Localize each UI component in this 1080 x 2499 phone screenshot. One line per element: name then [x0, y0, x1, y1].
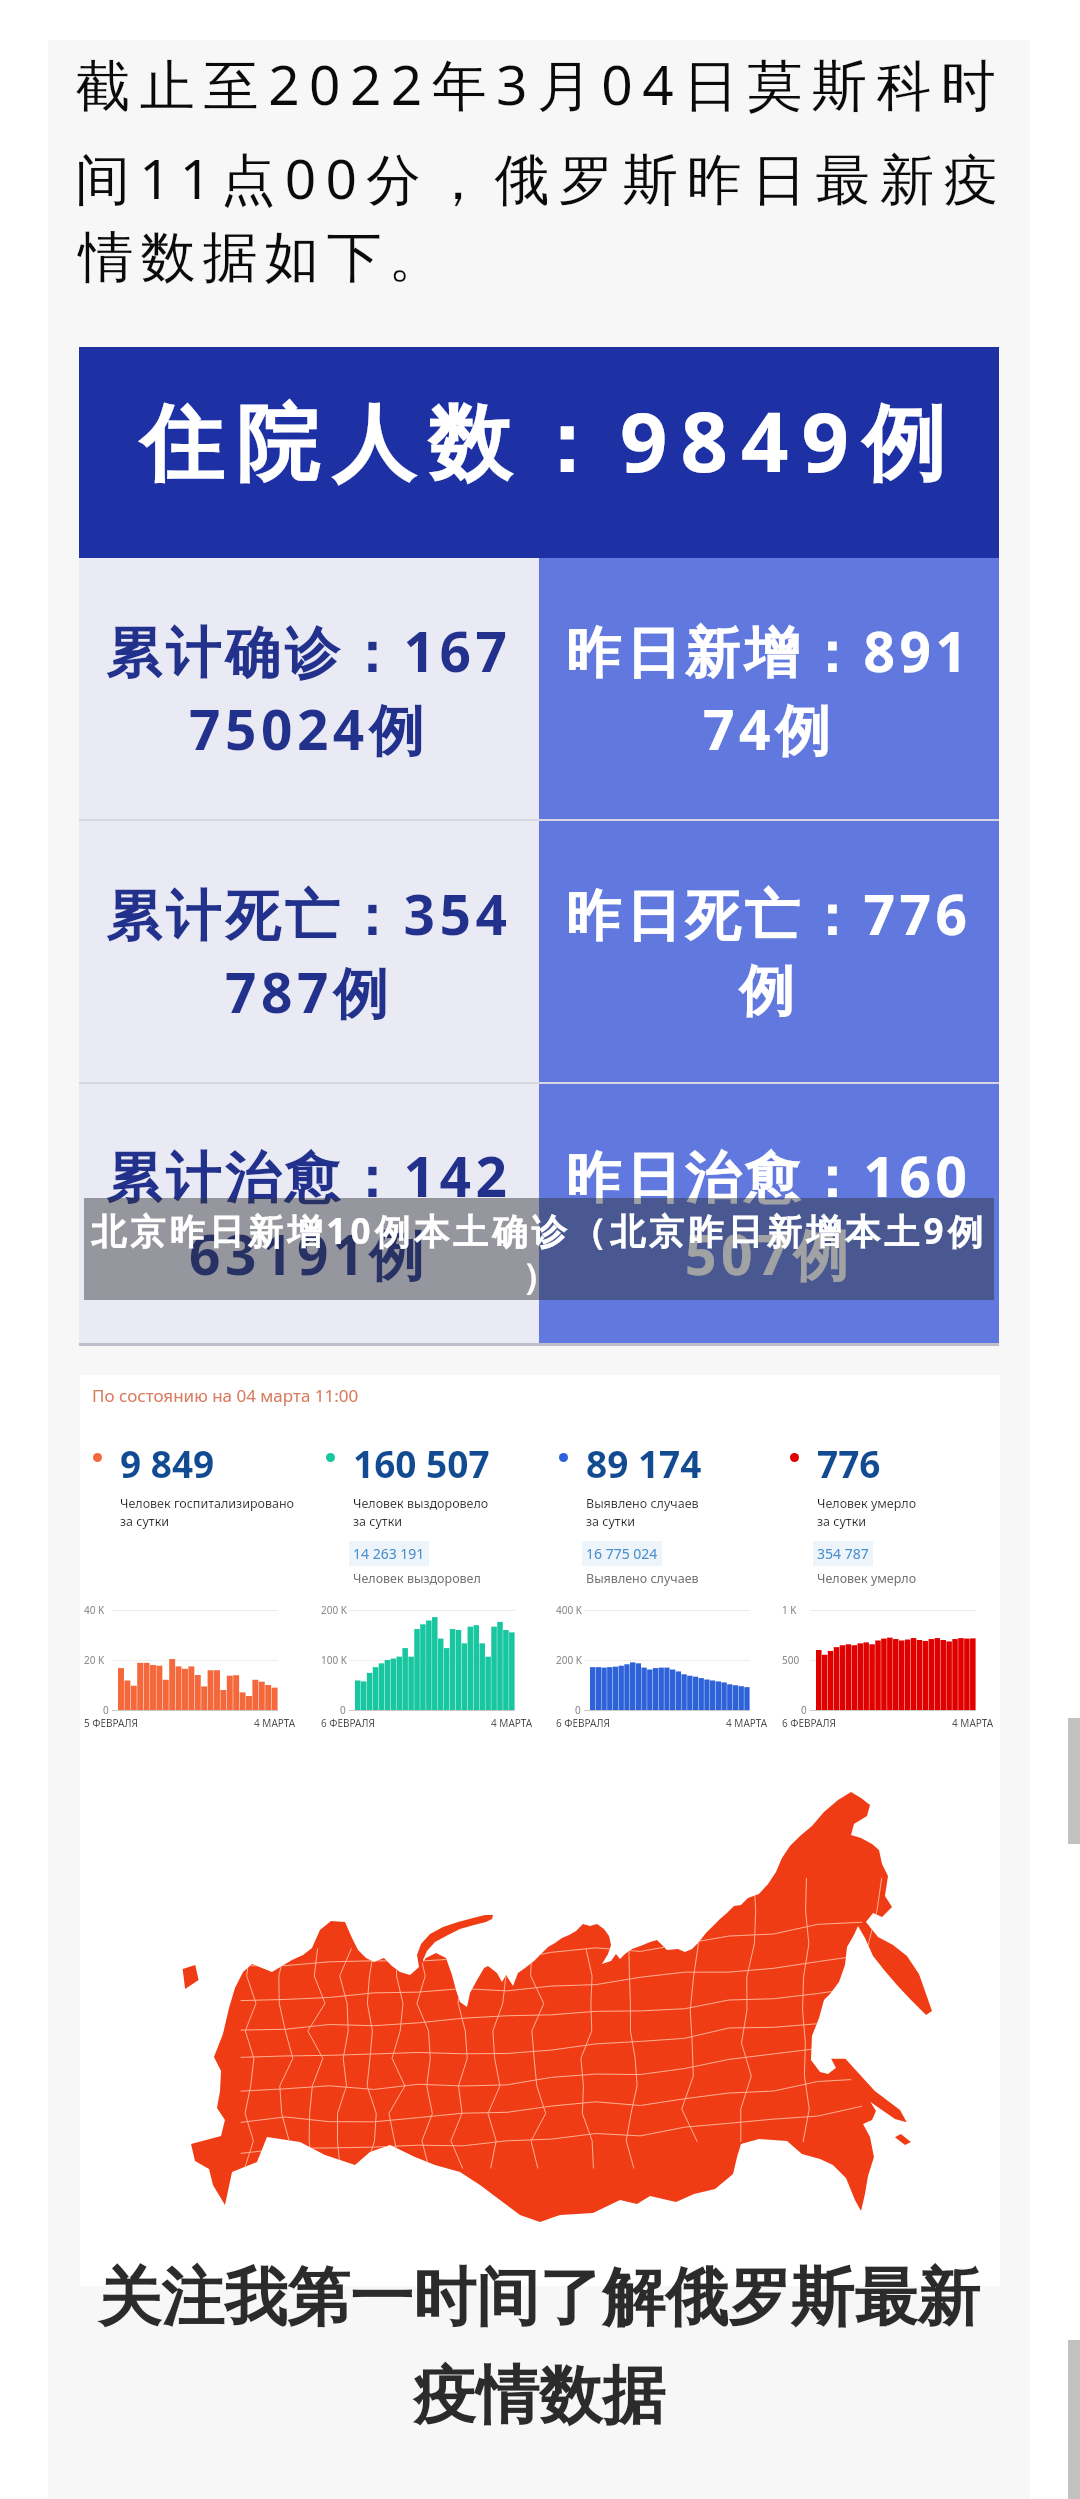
staticText: 40 K — [84, 1603, 105, 1617]
staticText: 情数据如下。 — [75, 223, 447, 292]
staticText: 4 МАРТА — [254, 1716, 296, 1730]
staticText: 4 МАРТА — [491, 1716, 533, 1730]
button[interactable]: 累计治愈：142 — [79, 1084, 539, 1343]
staticText: 住院人数：9849例 — [140, 383, 958, 496]
staticText: 昨日死亡：776 — [566, 876, 972, 951]
staticText: 0 — [575, 1703, 581, 1717]
staticText: 昨日新增：891 — [566, 613, 972, 688]
staticText: 关注我第一时间了解俄罗斯最新 — [98, 2258, 980, 2337]
staticText: 200 K — [556, 1653, 582, 1667]
button[interactable]: 住院人数：9849例 — [79, 347, 999, 558]
staticText: 4 МАРТА — [726, 1716, 768, 1730]
staticText: Выявлено случаев — [586, 1570, 699, 1587]
button[interactable]: 昨日治愈：160 — [539, 1084, 999, 1343]
staticText: 昨日治愈：160 — [566, 1138, 972, 1213]
staticText: за сутки — [120, 1513, 170, 1530]
staticText: 74例 — [703, 691, 835, 766]
staticText: Человек умерло — [817, 1495, 917, 1512]
staticText: Человек выздоровел — [353, 1570, 481, 1587]
staticText: ） — [522, 1255, 557, 1299]
staticText: 1 K — [782, 1603, 797, 1617]
staticText: 14 263 191 — [353, 1544, 425, 1563]
button[interactable]: 昨日死亡：776 — [539, 821, 999, 1082]
button[interactable]: 昨日新增：891 — [539, 558, 999, 819]
staticText: Человек умерло — [817, 1570, 917, 1587]
staticText: 776 — [817, 1438, 881, 1488]
staticText: Человек госпитализировано — [120, 1495, 295, 1512]
button[interactable]: 累计死亡：354 — [79, 821, 539, 1082]
staticText: 累计治愈：142 — [106, 1138, 512, 1213]
staticText: 0 — [340, 1703, 346, 1717]
staticText: за сутки — [353, 1513, 403, 1530]
staticText: 63191例 — [189, 1216, 429, 1291]
staticText: 疫情数据 — [413, 2356, 665, 2435]
staticText: 507例 — [685, 1216, 853, 1291]
staticText: 500 — [782, 1653, 800, 1667]
staticText: 间11点00分，俄罗斯昨日最新疫 — [75, 140, 1009, 215]
staticText: 北京昨日新增10例本土确诊（北京昨日新增本土9例 — [91, 1207, 987, 1255]
button[interactable]: Russia COVID-19 statistics chart — [80, 1375, 1000, 2286]
staticText: 例 — [739, 957, 799, 1026]
staticText: По состоянию на 04 марта 11:00 — [92, 1384, 359, 1407]
staticText: 截止至2022年3月04日莫斯科时 — [75, 46, 1006, 121]
staticText: 20 K — [84, 1653, 105, 1667]
button[interactable]: 累计确诊：167 — [79, 558, 539, 819]
staticText: 75024例 — [189, 691, 429, 766]
staticText: 累计死亡：354 — [106, 876, 512, 951]
staticText: за сутки — [586, 1513, 636, 1530]
staticText: 200 K — [321, 1603, 347, 1617]
staticText: 16 775 024 — [586, 1544, 658, 1563]
staticText: 0 — [801, 1703, 807, 1717]
staticText: 100 K — [321, 1653, 347, 1667]
staticText: 400 K — [556, 1603, 582, 1617]
staticText: 9 849 — [120, 1438, 215, 1488]
staticText: за сутки — [817, 1513, 867, 1530]
staticText: Выявлено случаев — [586, 1495, 699, 1512]
staticText: 6 ФЕВРАЛЯ — [782, 1716, 836, 1730]
staticText: 89 174 — [586, 1438, 702, 1488]
staticText: 787例 — [225, 954, 393, 1029]
staticText: 4 МАРТА — [952, 1716, 994, 1730]
staticText: 0 — [103, 1703, 109, 1717]
staticText: 354 787 — [817, 1544, 869, 1563]
staticText: 6 ФЕВРАЛЯ — [556, 1716, 610, 1730]
staticText: 160 507 — [353, 1438, 490, 1488]
staticText: Человек выздоровело — [353, 1495, 489, 1512]
button[interactable]: 北京昨日新增10例本土确诊（北京昨日新增本土9例 — [84, 1198, 994, 1300]
staticText: 累计确诊：167 — [106, 613, 512, 688]
staticText: 6 ФЕВРАЛЯ — [321, 1716, 375, 1730]
staticText: 5 ФЕВРАЛЯ — [84, 1716, 138, 1730]
